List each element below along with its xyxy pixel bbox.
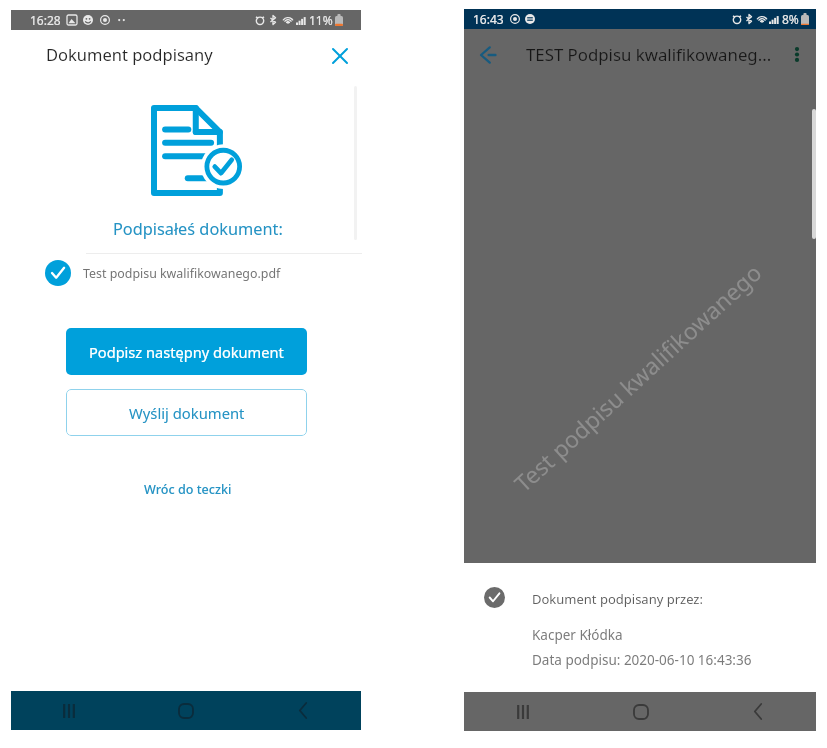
button[interactable]: Wstecz [699,692,816,731]
staticText: Podpisałeś dokument: [113,218,283,240]
staticText: 11% [309,12,333,28]
staticText: Wyślij dokument [129,403,245,423]
staticText: Kacper Kłódka [532,626,623,644]
button[interactable]: Ostatnie [11,691,127,730]
button[interactable]: Ekran główny [582,692,699,731]
button[interactable]: Wstecz [472,39,504,71]
staticText: TEST Podpisu kwalifikowaneg... [526,43,772,66]
button[interactable]: Więcej opcji [782,39,812,69]
button[interactable]: Ekran główny [127,691,244,730]
staticText: Dokument podpisany [46,43,213,65]
button[interactable]: Podpisano [484,587,505,608]
staticText: 16:28 [30,12,61,28]
staticText: 16:43 [473,11,504,27]
button[interactable]: Zamknij [324,40,356,72]
button[interactable]: Wyślij dokument [66,389,307,436]
button[interactable]: Podpisz następny dokument [66,328,307,375]
staticText: 8% [782,11,799,27]
button[interactable]: Test podpisu kwalifikowanego.pdf [11,252,361,294]
button[interactable]: Ostatnie [464,692,582,731]
staticText: Test podpisu kwalifikowanego.pdf [83,265,281,282]
staticText: Data podpisu: 2020-06-10 16:43:36 [532,651,752,669]
staticText: Wróc do teczki [144,481,232,498]
staticText: Podpisz następny dokument [89,342,284,362]
staticText: Dokument podpisany przez: [532,590,703,608]
staticText: Test podpisu kwalifikowanego [507,257,767,498]
button[interactable]: Wróc do teczki [134,475,242,504]
